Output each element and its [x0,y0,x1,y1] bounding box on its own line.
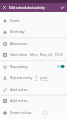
staticText: Event colour [10,110,32,115]
staticText: Edit scheduled activity [9,5,45,10]
button[interactable]: Start date [0,49,67,60]
button[interactable]: Event colour [0,107,67,118]
staticText: Mon, May 24, 1903 [30,52,63,57]
staticText: Start date [10,52,27,57]
button[interactable]: Birthday [0,26,67,37]
staticText: Repeat every [10,75,33,80]
staticText: 1 [35,75,38,80]
button[interactable]: Repeating [0,61,67,72]
button[interactable]: Event [0,15,67,26]
staticText: year [40,75,48,80]
staticText: Event [10,18,20,23]
staticText: Add notes [10,87,28,92]
button[interactable]: Save [58,3,67,12]
staticText: Birthday [10,29,25,34]
button[interactable]: Close [0,3,9,12]
button[interactable]: Afternoon [0,38,67,49]
button[interactable]: Add notes [0,84,67,95]
staticText: Add notes [10,98,28,103]
staticText: Repeating [10,64,28,69]
button[interactable]: Add notes [0,95,67,106]
staticText: Afternoon [10,41,28,46]
button[interactable]: Repeat every [0,72,67,83]
